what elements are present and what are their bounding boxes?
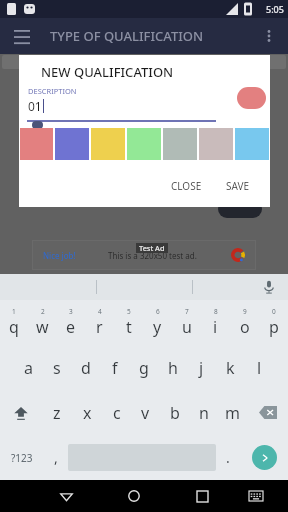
staticText: t: [126, 316, 132, 338]
button[interactable]: k: [216, 345, 245, 390]
staticText: l: [257, 357, 262, 379]
button[interactable]: n: [189, 390, 218, 435]
button[interactable]: 9: [230, 300, 259, 345]
staticText: d: [81, 357, 91, 379]
button[interactable]: More options: [256, 23, 282, 49]
button[interactable]: 2: [28, 300, 56, 345]
staticText: u: [182, 316, 192, 338]
button[interactable]: 8: [201, 300, 230, 345]
button[interactable]: b: [160, 390, 189, 435]
staticText: 3: [69, 307, 73, 316]
staticText: j: [199, 357, 204, 379]
staticText: f: [112, 357, 118, 379]
staticText: v: [141, 402, 150, 424]
button[interactable]: Color slider: [32, 121, 43, 129]
button[interactable]: x: [72, 390, 102, 435]
staticText: NEW QUALIFICATION: [41, 63, 174, 81]
button[interactable]: DESCRIPTION: [2, 55, 286, 69]
button[interactable]: Back: [49, 480, 84, 512]
button[interactable]: 6: [143, 300, 172, 345]
button[interactable]: Backspace: [247, 390, 288, 435]
staticText: b: [170, 402, 180, 424]
staticText: 01: [28, 98, 42, 114]
button[interactable]: 1: [0, 300, 28, 345]
staticText: m: [225, 402, 240, 424]
button[interactable]: .: [216, 435, 240, 480]
button[interactable]: d: [71, 345, 100, 390]
staticText: c: [113, 402, 121, 424]
staticText: a: [24, 357, 33, 379]
button[interactable]: f: [100, 345, 129, 390]
button[interactable]: Add qualification: [218, 200, 262, 218]
staticText: 8: [214, 307, 218, 316]
button[interactable]: SAVE: [218, 175, 258, 197]
staticText: 9: [243, 307, 247, 316]
staticText: Test Ad: [139, 243, 165, 253]
button[interactable]: z: [42, 390, 72, 435]
button[interactable]: a: [14, 345, 42, 390]
staticText: s: [53, 357, 61, 379]
button[interactable]: Enter: [252, 445, 277, 470]
button[interactable]: 4: [85, 300, 114, 345]
staticText: TYPE OF QUALIFICATION: [50, 27, 204, 45]
staticText: y: [153, 316, 162, 338]
staticText: q: [9, 316, 19, 338]
button[interactable]: c: [102, 390, 131, 435]
button[interactable]: v: [131, 390, 160, 435]
button[interactable]: g: [129, 345, 158, 390]
staticText: z: [53, 402, 61, 424]
staticText: h: [168, 357, 178, 379]
staticText: 7: [185, 307, 189, 316]
staticText: 0: [272, 307, 276, 316]
staticText: g: [139, 357, 149, 379]
staticText: e: [66, 316, 76, 338]
staticText: i: [213, 316, 218, 338]
button[interactable]: Switch keyboard: [238, 480, 274, 512]
staticText: DESCRIPTION: [28, 86, 77, 96]
button[interactable]: Recent apps: [184, 480, 220, 512]
button[interactable]: h: [158, 345, 187, 390]
button[interactable]: s: [42, 345, 71, 390]
button[interactable]: 7: [172, 300, 201, 345]
staticText: w: [36, 316, 49, 338]
staticText: 4: [98, 307, 102, 316]
button[interactable]: ?123: [0, 435, 44, 480]
staticText: Nice job!: [43, 250, 76, 261]
button[interactable]: ,: [44, 435, 68, 480]
staticText: SAVE: [226, 179, 250, 193]
button[interactable]: 3: [56, 300, 85, 345]
button[interactable]: Open navigation menu: [8, 22, 36, 50]
staticText: 5:05: [266, 3, 284, 15]
staticText: CLOSE: [171, 179, 202, 193]
button[interactable]: j: [187, 345, 216, 390]
button[interactable]: Home: [116, 480, 152, 512]
button[interactable]: CLOSE: [163, 175, 210, 197]
staticText: r: [96, 316, 103, 338]
staticText: ,: [54, 448, 58, 467]
staticText: n: [199, 402, 209, 424]
staticText: 1: [12, 307, 16, 316]
button[interactable]: l: [245, 345, 274, 390]
button[interactable]: 0: [259, 300, 288, 345]
staticText: ?123: [11, 451, 33, 465]
button[interactable]: 5: [114, 300, 143, 345]
staticText: k: [226, 357, 235, 379]
staticText: .: [226, 448, 230, 467]
button[interactable]: Shift: [0, 390, 42, 435]
staticText: x: [83, 402, 92, 424]
staticText: This is a 320x50 test ad.: [108, 250, 197, 261]
staticText: o: [240, 316, 250, 338]
staticText: 2: [41, 307, 45, 316]
staticText: p: [269, 316, 279, 338]
staticText: 6: [156, 307, 160, 316]
button[interactable]: m: [218, 390, 247, 435]
